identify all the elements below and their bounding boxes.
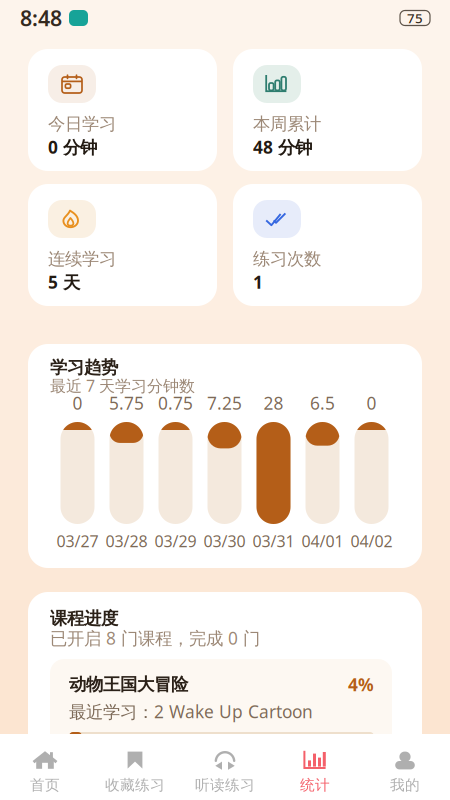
staticText: 听读练习 [195, 776, 255, 794]
staticText: 最近学习：2 Wake Up Cartoon [69, 700, 313, 723]
staticText: 连续学习 [48, 248, 116, 270]
button[interactable]: 听读练习 [180, 734, 270, 800]
staticText: 1 [253, 270, 263, 293]
staticText: 收藏练习 [105, 776, 165, 794]
button[interactable]: 我的 [360, 734, 450, 800]
staticText: 0.75 [158, 391, 193, 414]
staticText: 4% [348, 673, 374, 696]
staticText: 28 [263, 391, 283, 414]
staticText: 最近 7 天学习分钟数 [50, 375, 195, 396]
staticText: 已开启 8 门课程，完成 0 门 [50, 626, 260, 649]
staticText: 我的 [390, 776, 420, 794]
staticText: 04/02 [350, 530, 392, 552]
staticText: 7.25 [207, 391, 242, 414]
staticText: 0 [366, 391, 376, 414]
staticText: 统计 [300, 776, 330, 794]
staticText: 动物王国大冒险 [69, 674, 188, 695]
staticText: 今日学习 [48, 113, 116, 135]
staticText: 学习趋势 [50, 357, 118, 378]
button[interactable]: 动物王国大冒险 [50, 659, 392, 754]
staticText: 0 分钟 [48, 135, 97, 158]
staticText: 03/28 [105, 530, 147, 552]
staticText: 首页 [30, 776, 60, 794]
staticText: 75 [407, 9, 423, 27]
staticText: 03/27 [56, 530, 98, 552]
button[interactable]: 统计 [270, 734, 360, 800]
staticText: 8:48 [20, 4, 62, 32]
staticText: 5.75 [109, 391, 144, 414]
staticText: 03/29 [154, 530, 196, 552]
button[interactable]: 收藏练习 [90, 734, 180, 800]
staticText: 本周累计 [253, 113, 321, 135]
button[interactable]: 首页 [0, 734, 90, 800]
staticText: 课程进度 [50, 608, 118, 629]
staticText: 6.5 [310, 391, 335, 414]
staticText: 48 分钟 [253, 135, 312, 158]
staticText: 04/01 [301, 530, 343, 552]
staticText: 5 天 [48, 270, 80, 293]
staticText: 0 [72, 391, 82, 414]
staticText: 03/30 [203, 530, 245, 552]
staticText: 练习次数 [253, 248, 321, 270]
staticText: 03/31 [252, 530, 294, 552]
